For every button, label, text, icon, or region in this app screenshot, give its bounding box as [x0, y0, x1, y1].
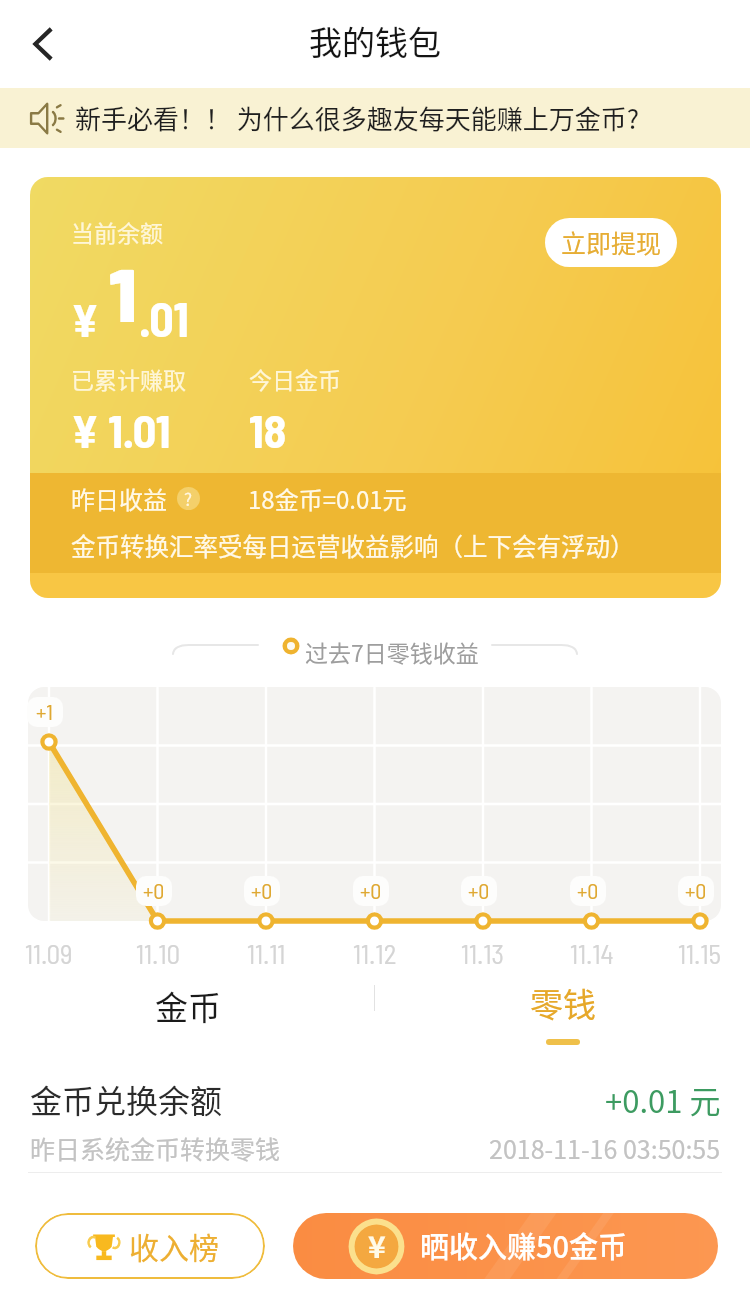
staticText: +0: [577, 877, 599, 903]
staticText: +1: [36, 698, 54, 724]
staticText: +0: [360, 877, 382, 903]
staticText: 金币转换汇率受每日运营收益影响（上下会有浮动）: [71, 528, 635, 563]
staticText: 已累计赚取: [71, 362, 186, 395]
button[interactable]: 立即提现: [545, 218, 677, 267]
staticText: 收入榜: [129, 1224, 219, 1267]
staticText: 1: [108, 242, 139, 322]
staticText: 立即提现: [561, 224, 662, 260]
staticText: +0: [468, 877, 490, 903]
staticText: ¥: [71, 291, 99, 346]
staticText: 我的钱包: [309, 17, 441, 65]
staticText: 11.11: [247, 937, 286, 969]
staticText: ¥ 1.01: [71, 402, 171, 457]
staticText: 新手必看！！ 为什么很多趣友每天能赚上万金币?: [75, 99, 640, 137]
button[interactable]: Back: [8, 8, 80, 80]
staticText: ¥: [368, 1223, 386, 1266]
staticText: 金币: [155, 982, 221, 1030]
staticText: 零钱: [530, 979, 596, 1027]
staticText: 18: [249, 402, 287, 457]
staticText: 18金币=0.01元: [248, 481, 407, 516]
staticText: 昨日系统金币转换零钱: [30, 1130, 281, 1166]
button[interactable]: Help: [177, 487, 200, 510]
staticText: +0: [143, 877, 165, 903]
staticText: 当前余额: [71, 215, 163, 248]
staticText: ?: [184, 487, 193, 509]
staticText: 11.15: [678, 937, 722, 969]
button[interactable]: 金币: [0, 971, 375, 1053]
button[interactable]: 收入榜: [35, 1213, 265, 1279]
staticText: 11.09: [25, 937, 73, 969]
staticText: 今日金币: [249, 362, 341, 395]
button[interactable]: ¥: [293, 1213, 718, 1279]
button[interactable]: 金币兑换余额: [0, 1053, 750, 1172]
staticText: 11.10: [136, 937, 181, 969]
staticText: 11.12: [353, 937, 397, 969]
staticText: 2018-11-16 03:50:55: [489, 1130, 721, 1166]
staticText: 11.14: [570, 937, 614, 969]
staticText: +0: [251, 877, 273, 903]
staticText: 过去7日零钱收益: [305, 635, 479, 668]
button[interactable]: 零钱: [375, 971, 750, 1053]
staticText: +0.01 元: [605, 1077, 721, 1122]
staticText: .01: [139, 289, 189, 347]
staticText: 晒收入赚50金币: [420, 1224, 628, 1266]
staticText: 金币兑换余额: [30, 1076, 223, 1122]
staticText: 11.13: [461, 937, 505, 969]
button[interactable]: 新手必看！！ 为什么很多趣友每天能赚上万金币?: [0, 88, 750, 148]
staticText: 昨日收益: [71, 481, 167, 516]
staticText: +0: [685, 877, 707, 903]
